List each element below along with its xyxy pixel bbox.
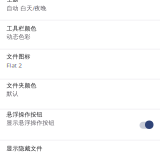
staticText: 悬浮操作按钮 <box>6 111 42 118</box>
staticText: 默认 <box>6 90 18 97</box>
button[interactable]: 文件夹颜色 <box>0 80 160 109</box>
staticText: 显示隐藏文件 <box>6 145 42 152</box>
staticText: 文件图标 <box>6 53 30 60</box>
staticText: 工具栏颜色 <box>6 25 36 32</box>
button[interactable]: 文件图标 <box>0 50 160 79</box>
staticText: 主题 <box>6 0 18 3</box>
staticText: 文件夹颜色 <box>6 82 36 89</box>
staticText: 自动 白天/夜晚 <box>6 4 46 12</box>
staticText: Flat 2 <box>6 61 21 69</box>
button[interactable]: 悬浮操作按钮 <box>0 110 160 140</box>
button[interactable]: 主题 <box>0 0 160 20</box>
button[interactable]: 工具栏颜色 <box>0 21 160 49</box>
staticText: 动态色彩 <box>6 33 30 40</box>
staticText: 显示悬浮操作按钮 <box>6 119 54 126</box>
button[interactable]: 显示隐藏文件 <box>0 141 160 160</box>
